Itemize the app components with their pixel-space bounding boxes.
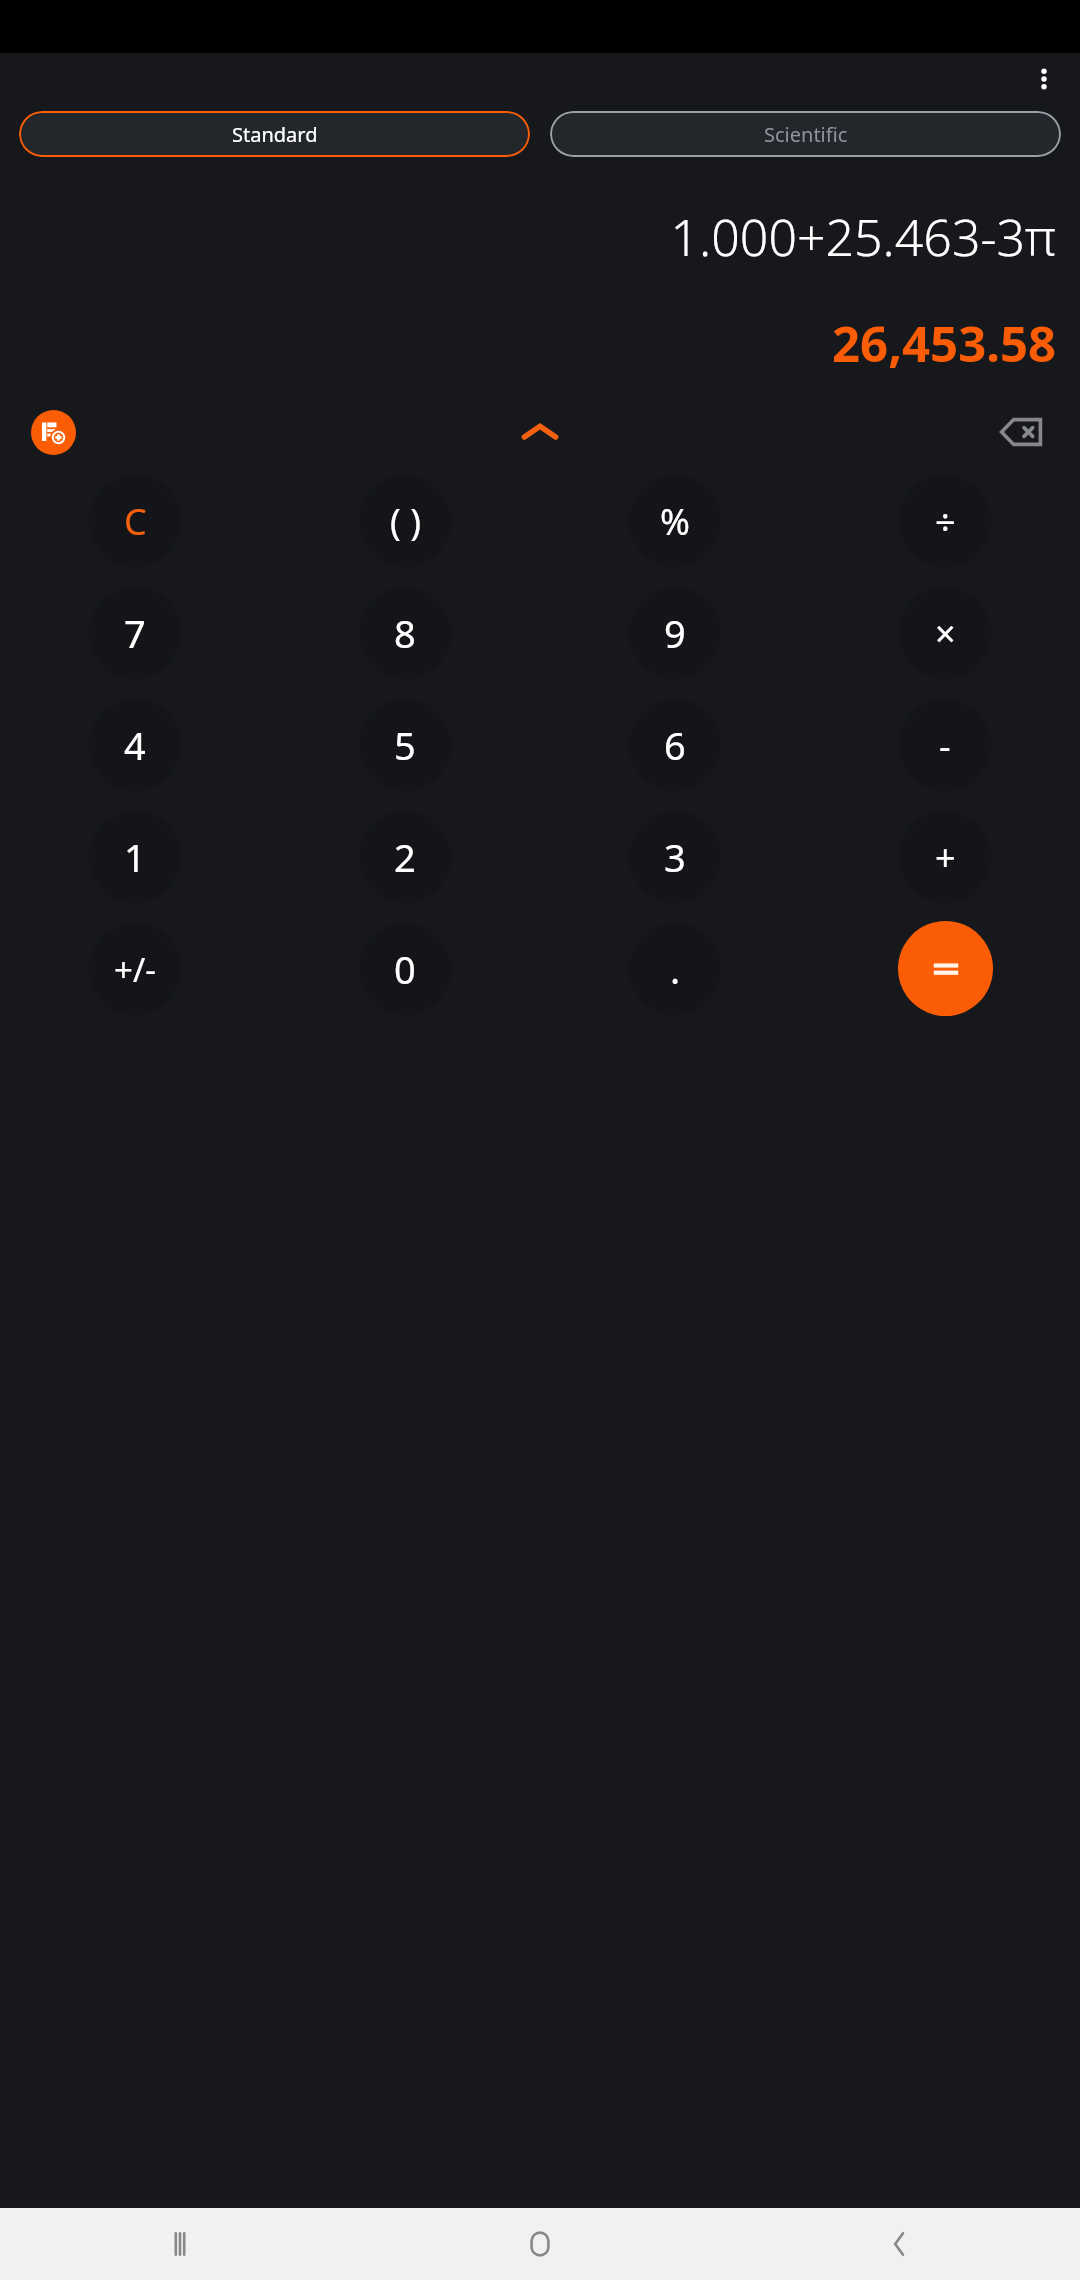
- button[interactable]: Scientific: [550, 111, 1061, 157]
- button[interactable]: Expand history: [510, 408, 570, 456]
- staticText: ÷: [935, 497, 956, 546]
- button[interactable]: 9: [629, 587, 721, 679]
- staticText: 1.000+25.463-3π: [670, 203, 1056, 271]
- button[interactable]: 5: [359, 699, 451, 791]
- staticText: 5: [394, 719, 416, 771]
- staticText: 6: [664, 719, 686, 771]
- button[interactable]: ÷: [899, 475, 991, 567]
- button[interactable]: 4: [89, 699, 181, 791]
- button[interactable]: .: [629, 923, 721, 1015]
- button[interactable]: Standard: [19, 111, 530, 157]
- button[interactable]: Add to memo: [31, 410, 76, 455]
- staticText: 26,453.58: [832, 310, 1056, 377]
- button[interactable]: [898, 921, 993, 1016]
- staticText: 9: [664, 607, 686, 659]
- button[interactable]: Back: [720, 2208, 1080, 2280]
- button[interactable]: 8: [359, 587, 451, 679]
- staticText: +: [935, 833, 956, 882]
- staticText: %: [660, 497, 690, 546]
- staticText: -: [939, 721, 951, 770]
- button[interactable]: Backspace: [988, 406, 1054, 458]
- staticText: 1: [124, 831, 146, 883]
- staticText: .: [670, 943, 681, 995]
- button[interactable]: 3: [629, 811, 721, 903]
- button[interactable]: 0: [359, 923, 451, 1015]
- staticText: Standard: [232, 121, 318, 148]
- button[interactable]: More options: [1022, 57, 1066, 101]
- button[interactable]: -: [899, 699, 991, 791]
- staticText: 7: [124, 607, 146, 659]
- staticText: ×: [935, 609, 956, 658]
- staticText: 8: [394, 607, 416, 659]
- button[interactable]: Home: [360, 2208, 720, 2280]
- staticText: 3: [664, 831, 686, 883]
- staticText: C: [124, 497, 147, 546]
- button[interactable]: 7: [89, 587, 181, 679]
- staticText: 4: [124, 719, 146, 771]
- button[interactable]: %: [629, 475, 721, 567]
- button[interactable]: 1: [89, 811, 181, 903]
- staticText: ( ): [390, 497, 421, 546]
- staticText: 2: [394, 831, 416, 883]
- staticText: Scientific: [764, 121, 848, 148]
- button[interactable]: +/-: [89, 923, 181, 1015]
- button[interactable]: ×: [899, 587, 991, 679]
- staticText: +/-: [114, 947, 156, 992]
- staticText: 0: [394, 943, 416, 995]
- button[interactable]: 2: [359, 811, 451, 903]
- button[interactable]: +: [899, 811, 991, 903]
- button[interactable]: ( ): [359, 475, 451, 567]
- button[interactable]: Recent apps: [0, 2208, 360, 2280]
- button[interactable]: 6: [629, 699, 721, 791]
- button[interactable]: C: [89, 475, 181, 567]
